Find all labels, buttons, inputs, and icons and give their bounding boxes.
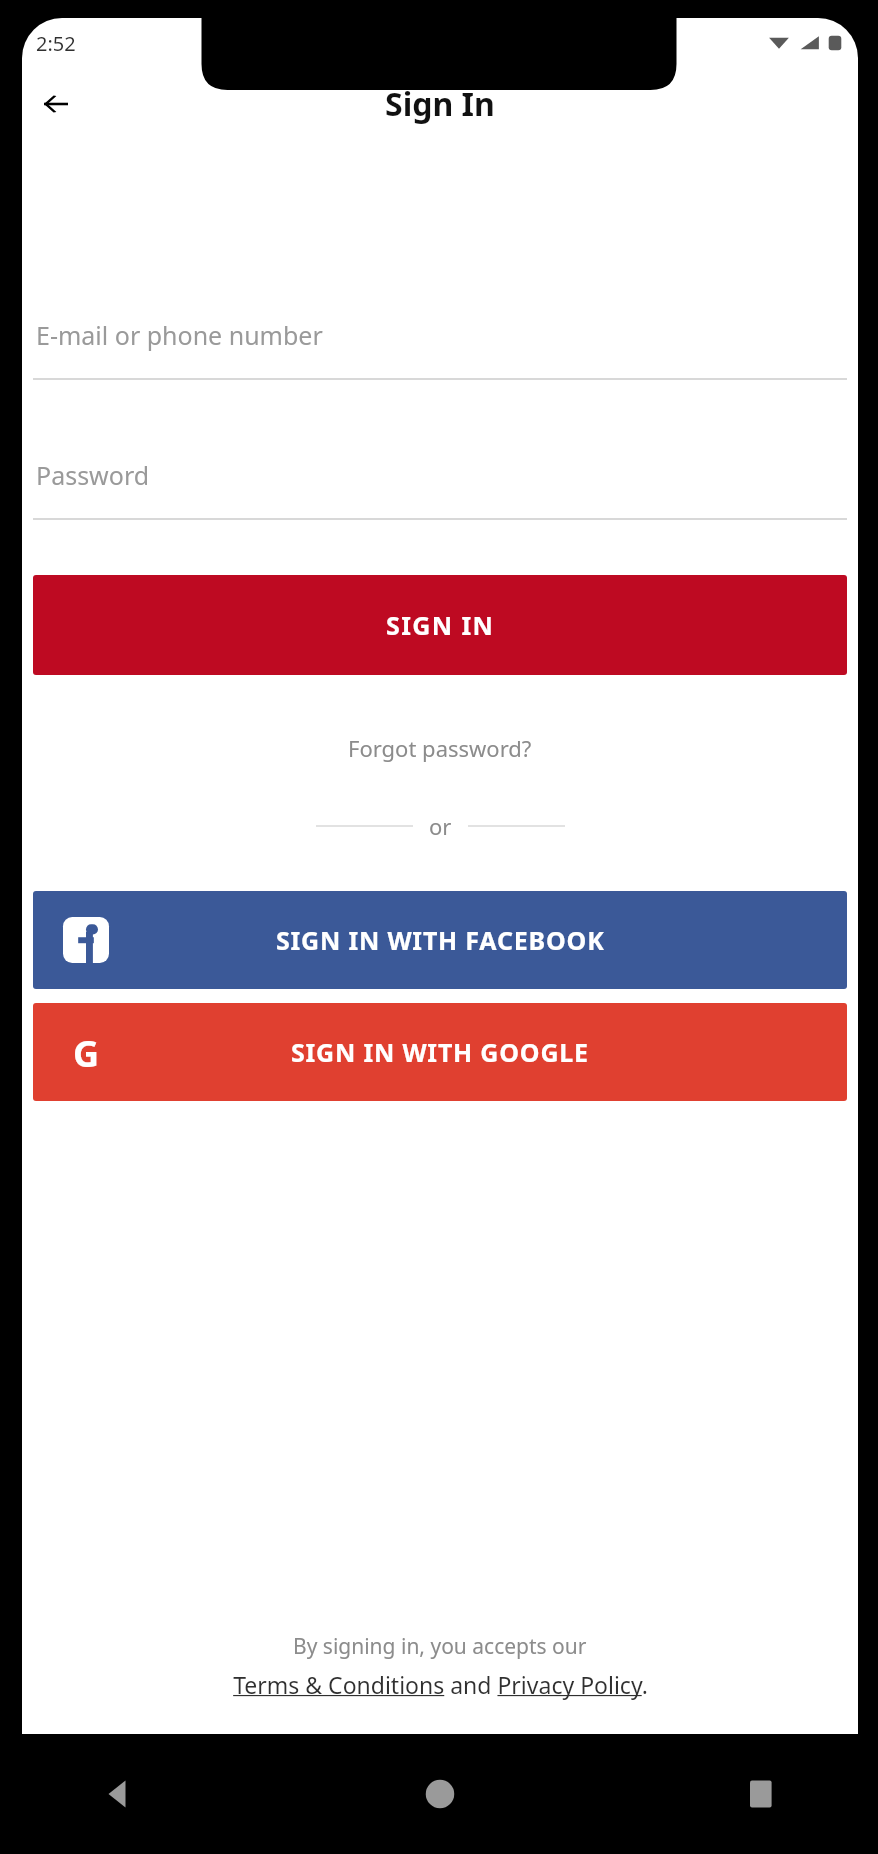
staticText: Forgot password? (348, 733, 532, 763)
button[interactable]: SIGN IN (33, 575, 847, 675)
button[interactable]: Back (82, 1758, 154, 1830)
staticText: SIGN IN (386, 608, 495, 642)
staticText: SIGN IN WITH FACEBOOK (276, 923, 605, 957)
button[interactable]: Recent apps (726, 1758, 798, 1830)
button[interactable]: E-mail or phone number (33, 292, 847, 378)
button[interactable]: Password (33, 432, 847, 518)
button[interactable]: Forgot password? (334, 727, 546, 769)
button[interactable]: Home (404, 1758, 476, 1830)
button[interactable]: SIGN IN WITH FACEBOOK (33, 891, 847, 989)
staticText: G (73, 1029, 100, 1075)
button[interactable]: G (33, 1003, 847, 1101)
staticText: Password (36, 458, 150, 492)
staticText: SIGN IN WITH GOOGLE (291, 1035, 589, 1069)
staticText: E-mail or phone number (36, 318, 323, 352)
button[interactable]: Back (28, 76, 84, 132)
button[interactable]: Terms & Conditions and Privacy Policy. (233, 1669, 648, 1700)
staticText: Sign In (385, 82, 495, 126)
staticText: By signing in, you accepts our (293, 1632, 587, 1661)
staticText: 2:52 (36, 30, 76, 57)
staticText: or (429, 811, 452, 841)
